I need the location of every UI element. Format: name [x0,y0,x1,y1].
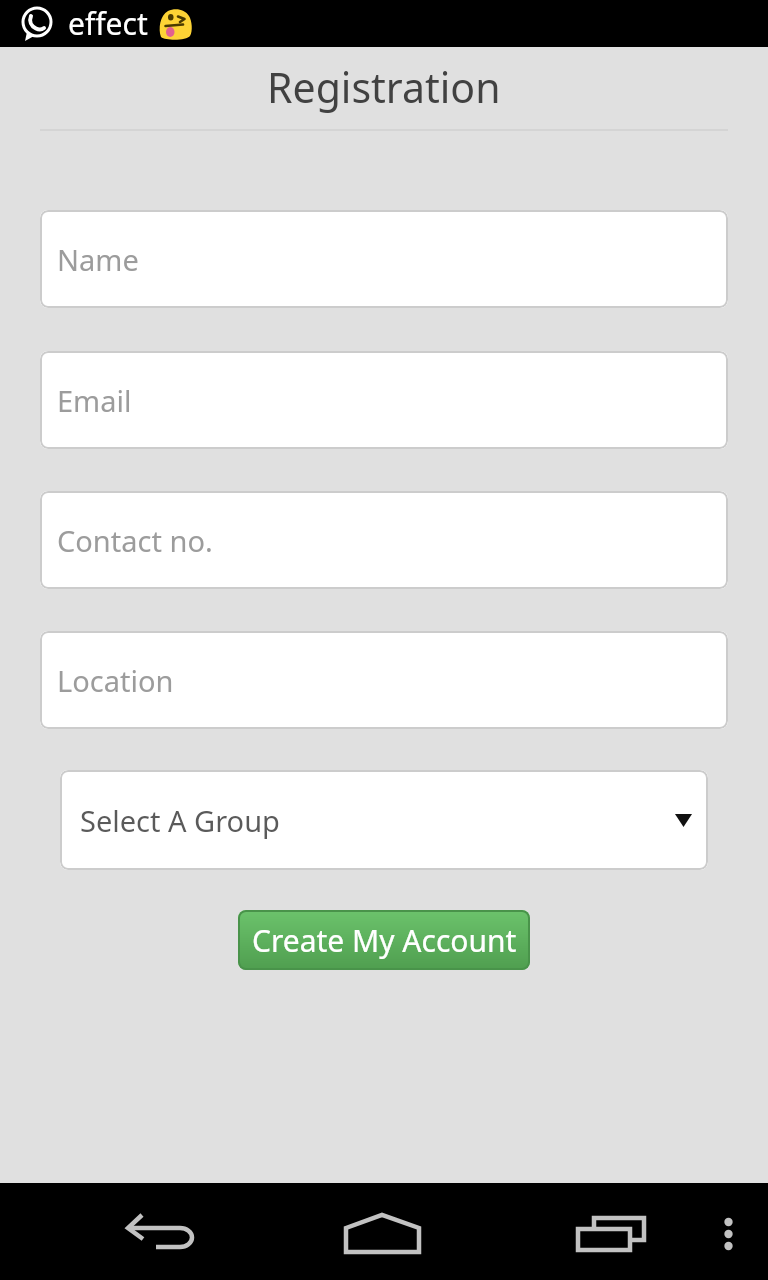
button[interactable]: Location [40,631,728,729]
button[interactable]: Name [40,210,728,308]
button[interactable]: Create My Account [238,910,530,970]
staticText: Create My Account [252,920,517,961]
staticText: Contact no. [57,521,213,560]
staticText: effect [68,3,148,44]
button[interactable]: Select A Group [60,770,708,870]
button[interactable]: Contact no. [40,491,728,589]
staticText: Registration [267,59,501,115]
button[interactable] [712,1217,746,1249]
button[interactable] [572,1211,650,1255]
staticText: Select A Group [80,801,280,840]
staticText: Name [57,240,139,279]
staticText: Location [57,661,174,700]
button[interactable] [344,1213,424,1255]
button[interactable] [122,1211,198,1255]
staticText: Email [57,381,132,420]
button[interactable]: Email [40,351,728,449]
